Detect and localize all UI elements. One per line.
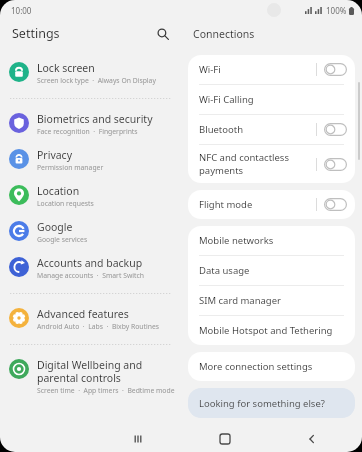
staticText: 10:00 bbox=[11, 5, 32, 16]
staticText: Data usage bbox=[199, 264, 347, 277]
button[interactable]: Data usage bbox=[188, 256, 355, 285]
staticText: Wi-Fi bbox=[199, 63, 311, 76]
staticText: Bluetooth bbox=[199, 123, 311, 136]
staticText: 100% bbox=[326, 5, 347, 16]
staticText: Manage accounts · Smart Switch bbox=[37, 271, 144, 280]
button[interactable]: Bluetooth bbox=[188, 115, 355, 144]
staticText: Screen time · App timers · Bedtime mode bbox=[37, 386, 175, 395]
button[interactable]: Mobile networks bbox=[188, 226, 355, 255]
button[interactable]: Advanced features bbox=[0, 301, 181, 337]
button[interactable]: Home bbox=[181, 426, 268, 452]
button[interactable]: Back bbox=[268, 426, 355, 452]
staticText: SIM card manager bbox=[199, 294, 347, 307]
staticText: Mobile Hotspot and Tethering bbox=[199, 324, 347, 337]
button[interactable]: SIM card manager bbox=[188, 286, 355, 315]
button[interactable]: Lock screen bbox=[0, 55, 181, 91]
button[interactable]: Looking for something else? bbox=[188, 388, 355, 418]
staticText: Settings bbox=[12, 25, 154, 42]
button[interactable]: Wi-Fi Calling bbox=[188, 85, 355, 114]
staticText: NFC and contactless payments bbox=[199, 151, 311, 177]
staticText: Looking for something else? bbox=[199, 397, 325, 410]
staticText: Google bbox=[37, 220, 73, 234]
button[interactable]: Flight mode bbox=[188, 190, 355, 219]
button[interactable]: Digital Wellbeing and parental controls bbox=[0, 352, 181, 401]
staticText: Connections bbox=[193, 27, 255, 41]
staticText: Permission manager bbox=[37, 163, 104, 172]
button[interactable]: NFC and contactless payments bbox=[188, 145, 355, 183]
button[interactable]: Biometrics and security bbox=[0, 106, 181, 142]
staticText: Mobile networks bbox=[199, 234, 347, 247]
staticText: Location requests bbox=[37, 199, 94, 208]
staticText: Face recognition · Fingerprints bbox=[37, 127, 138, 136]
staticText: Digital Wellbeing and parental controls bbox=[37, 358, 175, 385]
staticText: Flight mode bbox=[199, 198, 311, 211]
staticText: Google services bbox=[37, 235, 88, 244]
staticText: Lock screen bbox=[37, 61, 95, 75]
staticText: Screen lock type · Always On Display bbox=[37, 76, 156, 85]
staticText: Privacy bbox=[37, 148, 73, 162]
staticText: Biometrics and security bbox=[37, 112, 153, 126]
staticText: Advanced features bbox=[37, 307, 129, 321]
button[interactable]: Accounts and backup bbox=[0, 250, 181, 286]
button[interactable]: Wi-Fi bbox=[188, 55, 355, 84]
staticText: Android Auto · Labs · Bixby Routines bbox=[37, 322, 159, 331]
staticText: More connection settings bbox=[199, 360, 347, 373]
button[interactable]: Recents bbox=[94, 426, 181, 452]
button[interactable]: Mobile Hotspot and Tethering bbox=[188, 316, 355, 345]
button[interactable]: More connection settings bbox=[188, 352, 355, 381]
staticText: Location bbox=[37, 184, 80, 198]
button[interactable]: Search bbox=[154, 25, 171, 42]
staticText: Accounts and backup bbox=[37, 256, 143, 270]
staticText: Wi-Fi Calling bbox=[199, 93, 347, 106]
button[interactable]: Google bbox=[0, 214, 181, 250]
button[interactable]: Location bbox=[0, 178, 181, 214]
button[interactable]: Privacy bbox=[0, 142, 181, 178]
